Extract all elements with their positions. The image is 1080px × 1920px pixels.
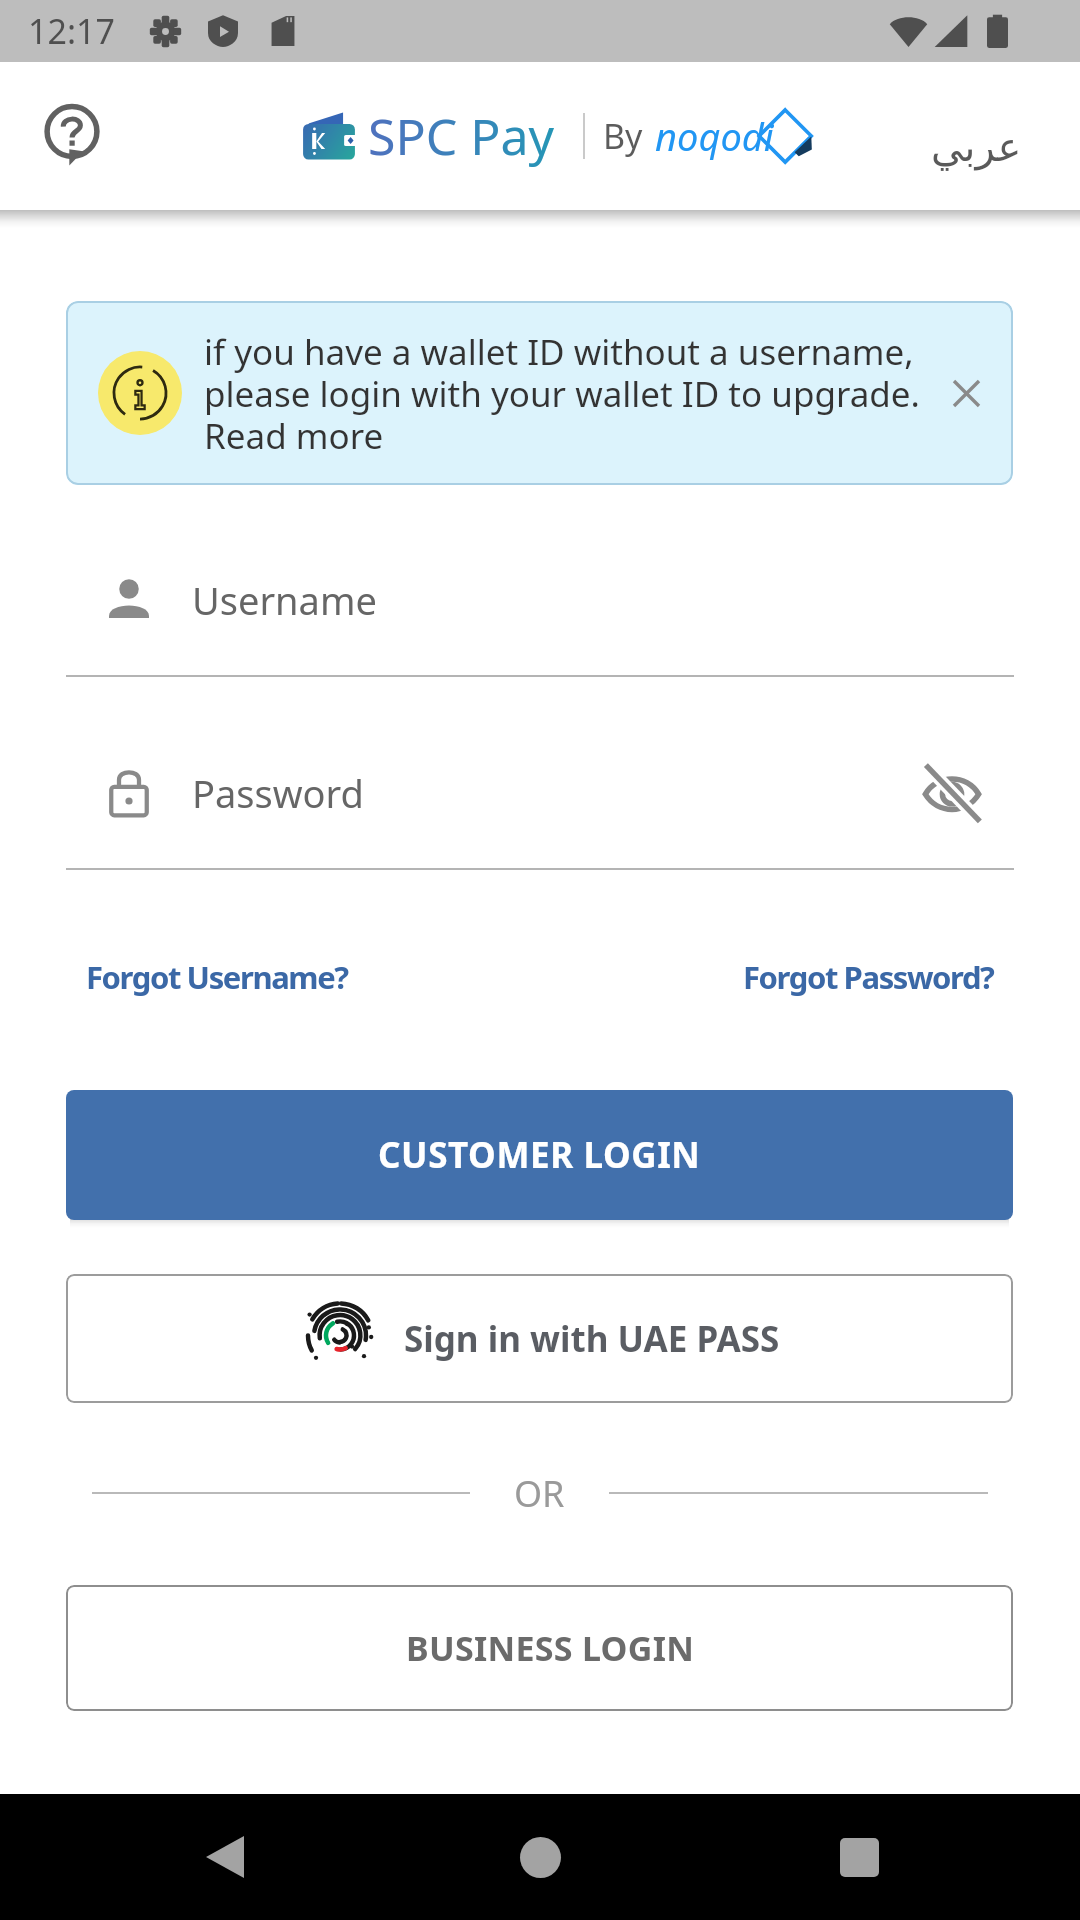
button[interactable]: Password <box>66 761 1014 825</box>
staticText: noqodi <box>655 110 774 162</box>
button[interactable]: Forgot Username? <box>82 952 352 1002</box>
button[interactable]: Username <box>66 568 1014 632</box>
staticText: By <box>603 113 643 159</box>
staticText: SPC Pay <box>368 102 555 170</box>
button[interactable]: عربي <box>931 124 1022 171</box>
button[interactable]: Home <box>477 1794 603 1920</box>
button[interactable]: Back <box>162 1794 288 1920</box>
button[interactable]: BUSINESS LOGIN <box>66 1585 1013 1711</box>
button[interactable]: Recents <box>796 1794 922 1920</box>
button[interactable]: CUSTOMER LOGIN <box>66 1090 1013 1220</box>
button[interactable]: Close <box>934 361 998 425</box>
staticText: 12:17 <box>28 8 115 54</box>
staticText: Username <box>192 574 377 626</box>
button[interactable]: Show password <box>912 761 992 825</box>
staticText: BUSINESS LOGIN <box>406 1625 695 1671</box>
button[interactable]: Sign in with UAE PASS <box>66 1274 1013 1403</box>
staticText: CUSTOMER LOGIN <box>378 1131 701 1179</box>
staticText: Password <box>192 767 364 819</box>
staticText: Sign in with UAE PASS <box>404 1315 780 1363</box>
button[interactable]: Help <box>30 94 114 178</box>
staticText: if you have a wallet ID without a userna… <box>204 328 928 459</box>
staticText: Forgot Username? <box>86 956 348 998</box>
staticText: Forgot Password? <box>743 956 994 998</box>
button[interactable]: Forgot Password? <box>739 952 998 1002</box>
staticText: عربي <box>931 124 1022 171</box>
staticText: OR <box>514 1469 565 1518</box>
button[interactable]: if you have a wallet ID without a userna… <box>66 301 1013 485</box>
